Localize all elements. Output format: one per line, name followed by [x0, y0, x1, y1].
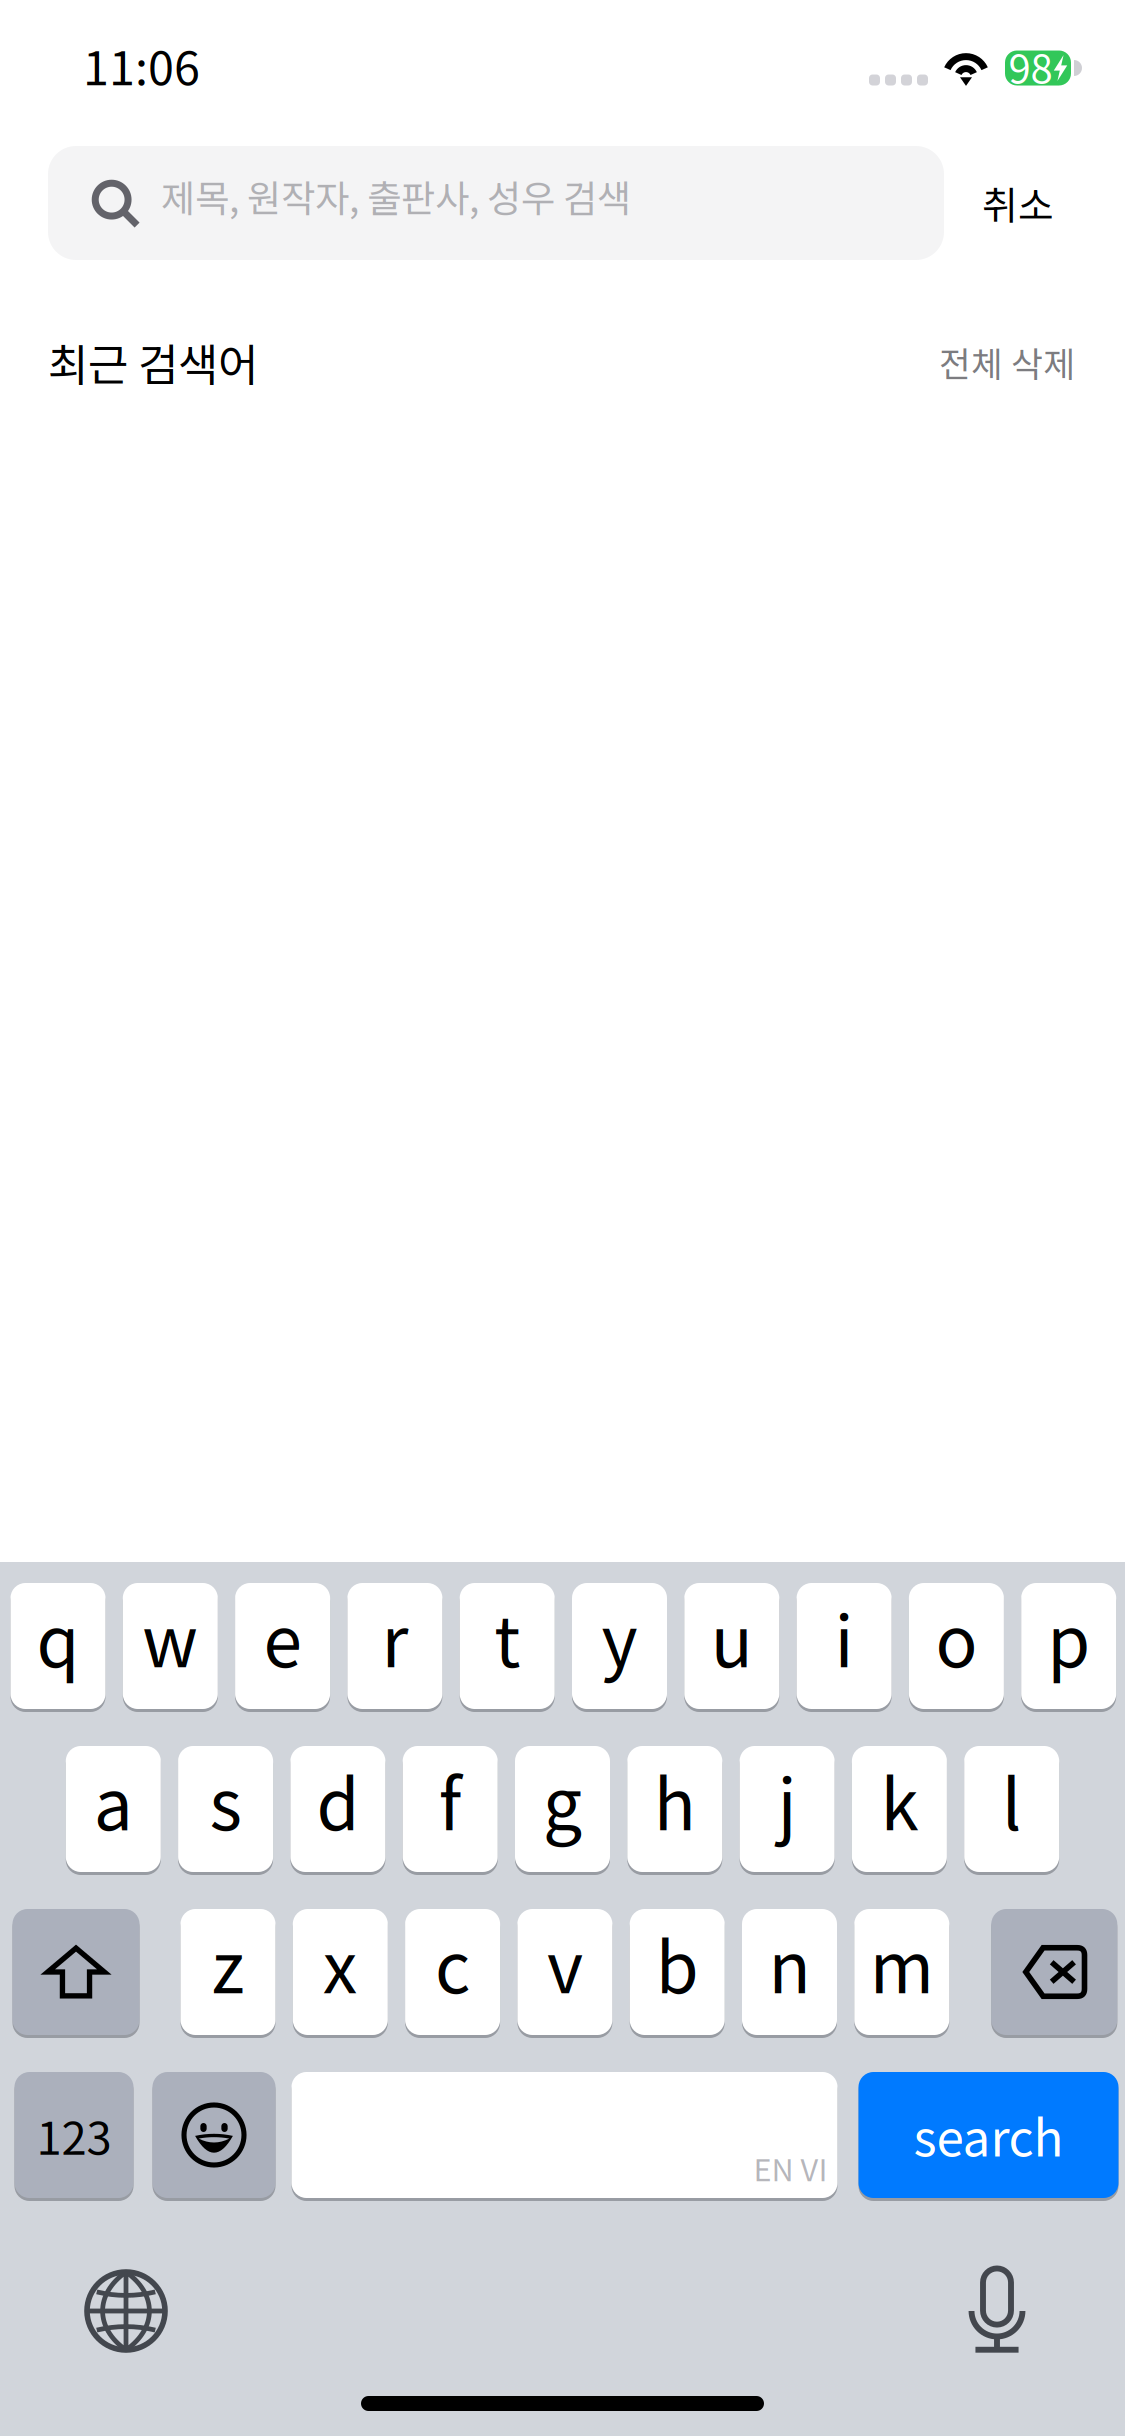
button[interactable]: t: [460, 1583, 555, 1709]
button[interactable]: z: [180, 1909, 275, 2035]
button[interactable]: i: [797, 1583, 892, 1709]
button[interactable]: x: [293, 1909, 388, 2035]
button[interactable]: Dictation: [969, 2268, 1025, 2353]
button[interactable]: y: [572, 1583, 667, 1709]
button[interactable]: u: [684, 1583, 779, 1709]
staticText: g: [543, 1750, 582, 1850]
staticText: m: [870, 1913, 934, 2013]
staticText: 취소: [982, 175, 1054, 231]
staticText: 최근 검색어: [48, 330, 258, 394]
button[interactable]: a: [66, 1746, 161, 1872]
staticText: x: [323, 1913, 358, 2013]
staticText: r: [381, 1587, 408, 1687]
button[interactable]: w: [123, 1583, 218, 1709]
staticText: e: [264, 1587, 302, 1687]
staticText: 전체 삭제: [939, 337, 1075, 387]
staticText: h: [654, 1750, 696, 1850]
button[interactable]: s: [178, 1746, 273, 1872]
staticText: y: [601, 1587, 637, 1687]
button[interactable]: k: [852, 1746, 947, 1872]
staticText: f: [439, 1750, 462, 1850]
button[interactable]: r: [347, 1583, 442, 1709]
staticText: d: [316, 1750, 359, 1850]
staticText: c: [435, 1913, 470, 2013]
staticText: 제목, 원작자, 출판사, 성우 검색: [161, 169, 631, 223]
button[interactable]: q: [10, 1583, 105, 1709]
button[interactable]: EN VI: [291, 2072, 837, 2198]
staticText: z: [211, 1913, 244, 2013]
button[interactable]: v: [517, 1909, 612, 2035]
staticText: 11:06: [83, 31, 200, 99]
button[interactable]: Shift: [12, 1909, 139, 2035]
button[interactable]: 취소: [982, 146, 1054, 260]
button[interactable]: n: [742, 1909, 837, 2035]
staticText: j: [778, 1750, 797, 1850]
button[interactable]: 123: [14, 2072, 133, 2198]
staticText: u: [711, 1587, 753, 1687]
staticText: a: [94, 1750, 133, 1850]
button[interactable]: d: [290, 1746, 385, 1872]
staticText: EN VI: [753, 2146, 827, 2190]
staticText: o: [935, 1587, 977, 1687]
button[interactable]: search: [858, 2072, 1118, 2198]
staticText: k: [880, 1750, 918, 1850]
staticText: b: [656, 1913, 699, 2013]
button[interactable]: Emoji: [152, 2072, 275, 2198]
staticText: w: [142, 1587, 198, 1687]
staticText: q: [36, 1587, 79, 1687]
button[interactable]: b: [630, 1909, 725, 2035]
staticText: search: [913, 2099, 1063, 2171]
button[interactable]: j: [740, 1746, 835, 1872]
button[interactable]: m: [854, 1909, 949, 2035]
button[interactable]: e: [235, 1583, 330, 1709]
staticText: t: [494, 1587, 520, 1687]
staticText: i: [835, 1587, 854, 1687]
button[interactable]: p: [1021, 1583, 1116, 1709]
staticText: p: [1047, 1587, 1090, 1687]
button[interactable]: f: [403, 1746, 498, 1872]
button[interactable]: Delete: [991, 1909, 1117, 2035]
button[interactable]: 전체 삭제: [939, 337, 1075, 387]
staticText: l: [1002, 1750, 1022, 1850]
staticText: 98: [1008, 37, 1052, 95]
staticText: n: [768, 1913, 810, 2013]
button[interactable]: o: [909, 1583, 1004, 1709]
button[interactable]: l: [964, 1746, 1059, 1872]
button[interactable]: Next keyboard: [87, 2272, 165, 2350]
button[interactable]: c: [405, 1909, 500, 2035]
button[interactable]: g: [515, 1746, 610, 1872]
staticText: s: [210, 1750, 242, 1850]
staticText: v: [547, 1913, 583, 2013]
button[interactable]: h: [627, 1746, 722, 1872]
staticText: 123: [36, 2102, 111, 2168]
